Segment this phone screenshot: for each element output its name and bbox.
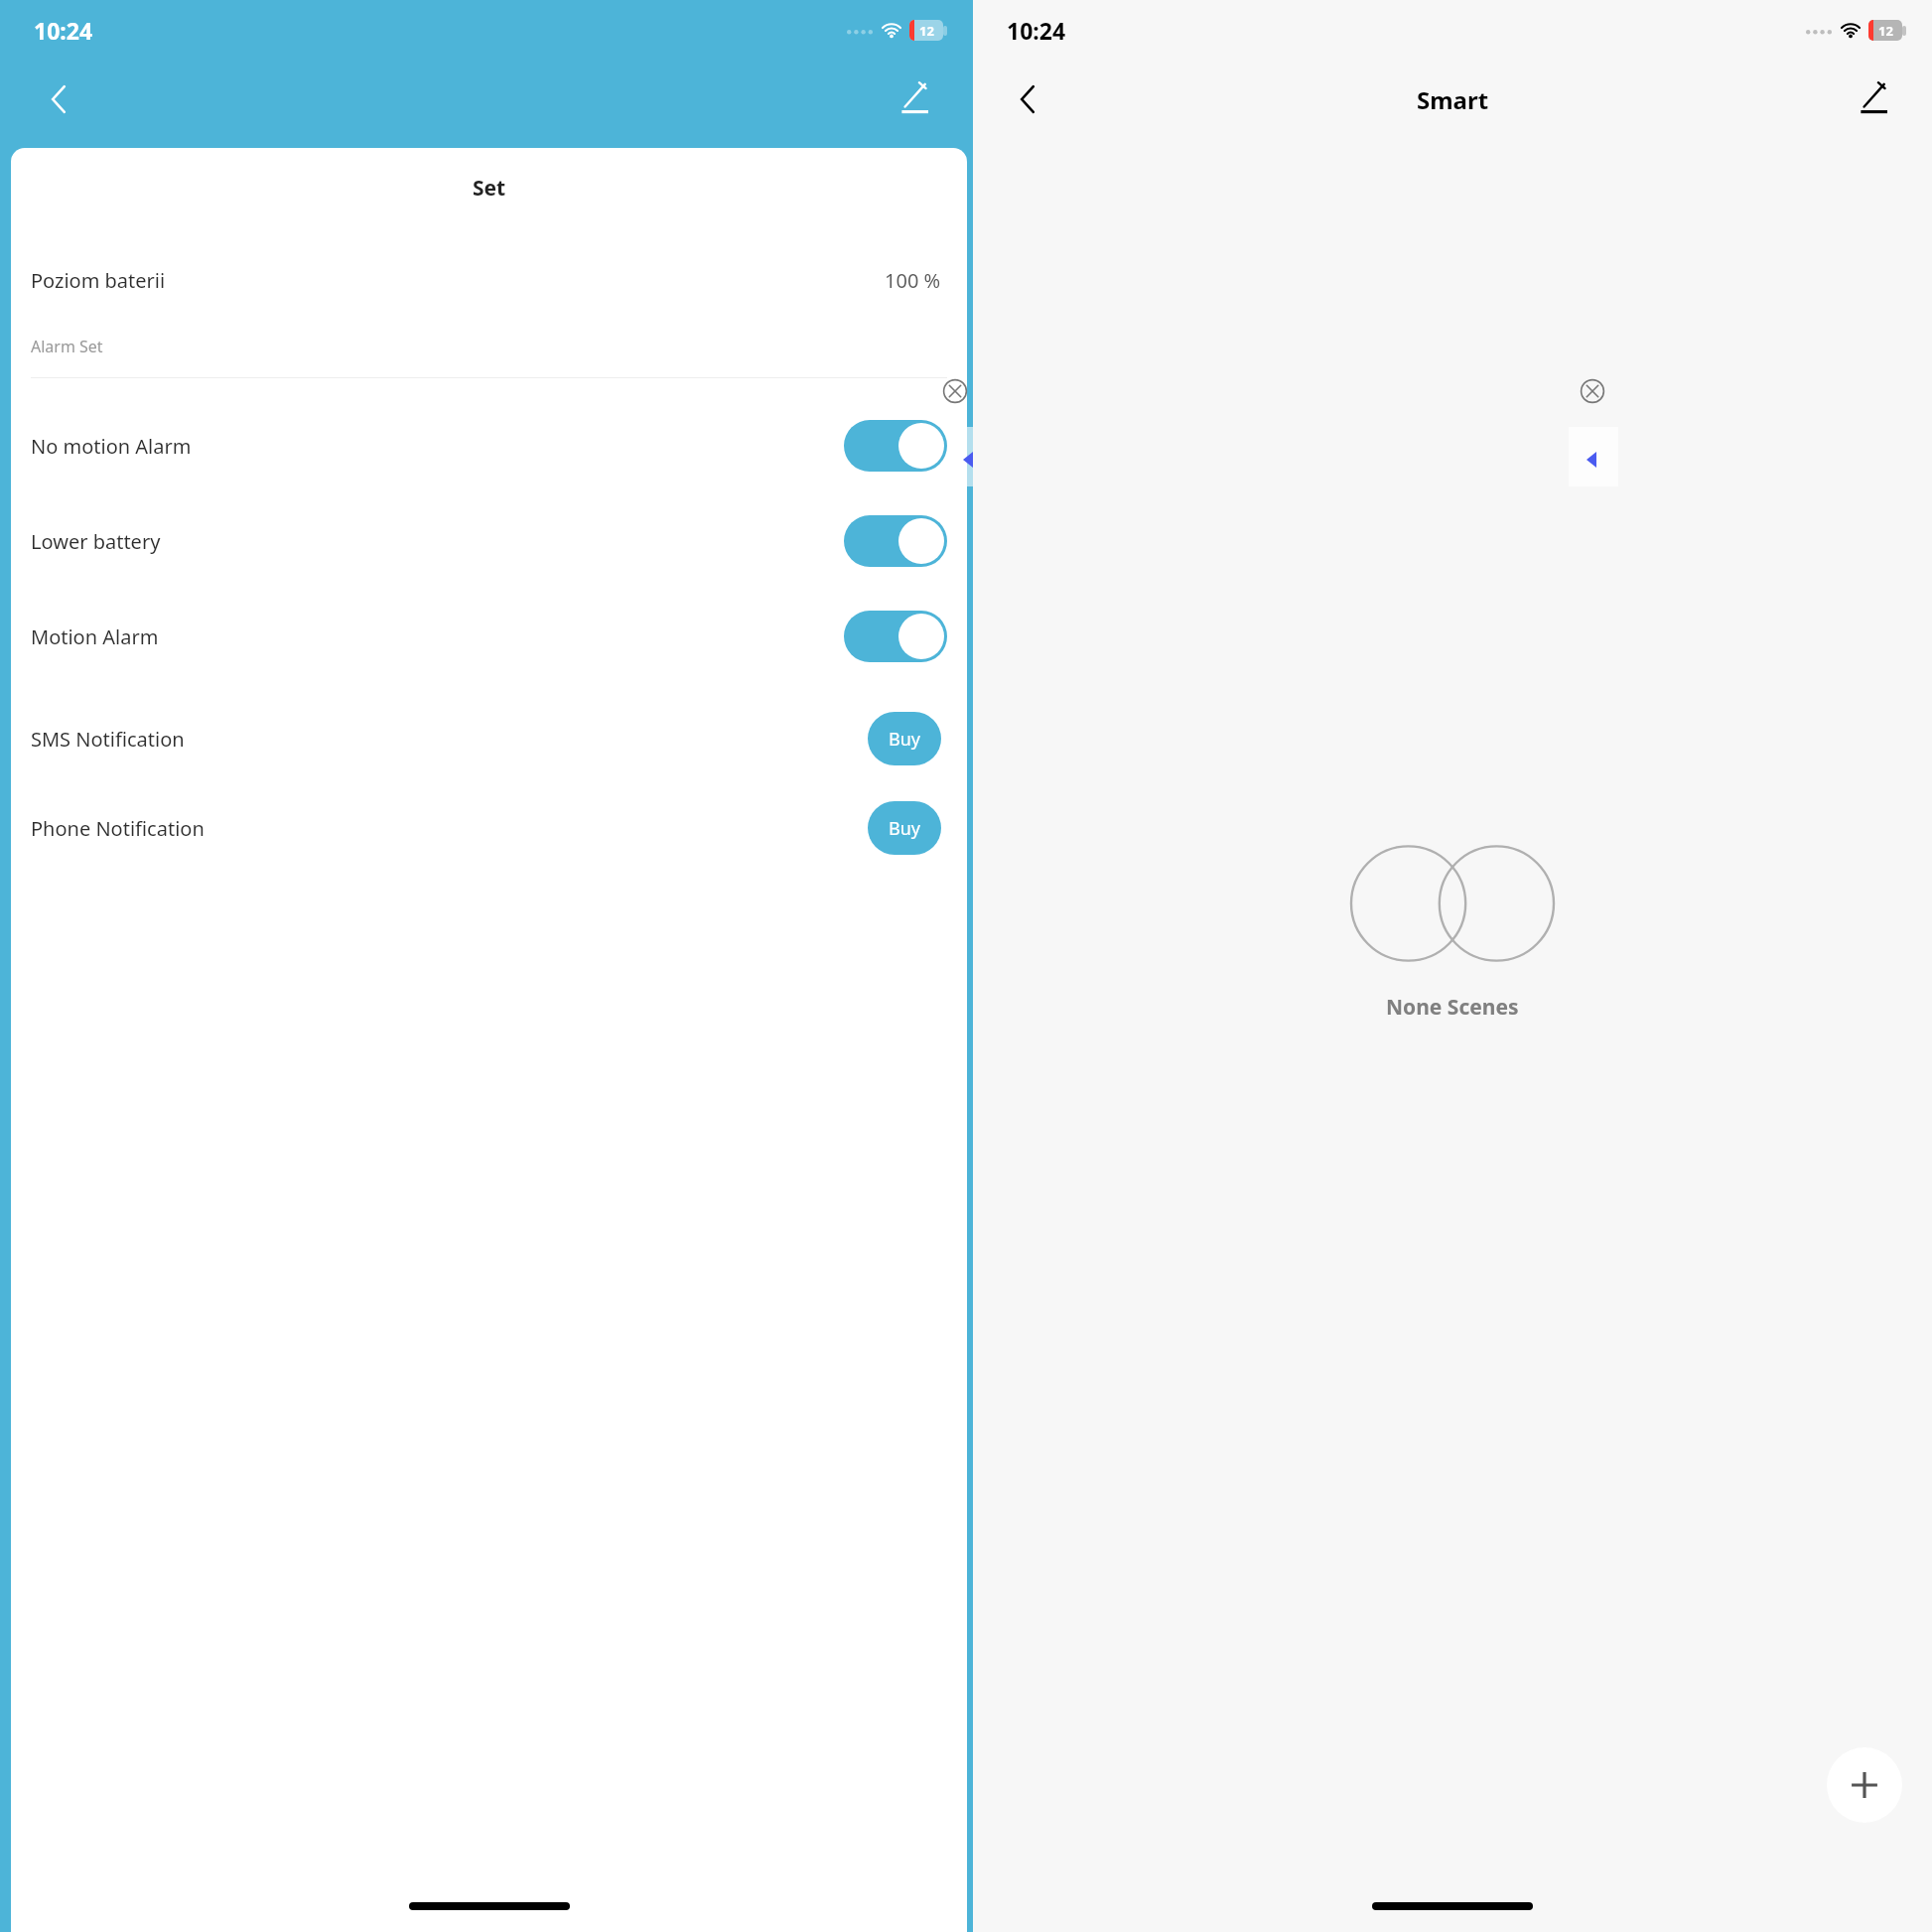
button[interactable]: Lower battery	[11, 513, 967, 569]
staticText: Poziom baterii	[31, 267, 166, 294]
button[interactable]: Buy	[868, 801, 941, 855]
button[interactable]: Motion Alarm	[11, 609, 967, 664]
button[interactable]: Back	[999, 69, 1058, 129]
button[interactable]: Poziom baterii	[11, 252, 967, 308]
staticText: 10:24	[1007, 15, 1066, 46]
staticText: 100 %	[885, 267, 941, 294]
staticText: Buy	[889, 727, 921, 752]
button[interactable]	[844, 420, 947, 472]
staticText: Smart	[1417, 83, 1489, 116]
button[interactable]: No motion Alarm	[11, 418, 967, 474]
button[interactable]	[844, 611, 947, 662]
button[interactable]: Add scene	[1827, 1747, 1902, 1823]
staticText: No motion Alarm	[31, 433, 192, 460]
button[interactable]: Close	[941, 377, 969, 405]
staticText: SMS Notification	[31, 726, 185, 753]
staticText: Phone Notification	[31, 815, 205, 842]
staticText: 10:24	[34, 15, 93, 46]
staticText: None Scenes	[1386, 993, 1519, 1022]
button[interactable]: Buy	[868, 712, 941, 765]
staticText: Set	[11, 174, 967, 203]
button[interactable]	[844, 515, 947, 567]
button[interactable]: Close	[1579, 377, 1606, 405]
staticText: Lower battery	[31, 528, 161, 555]
button[interactable]: Edit	[884, 69, 943, 129]
button[interactable]: Back	[30, 69, 89, 129]
staticText: 12	[919, 22, 934, 40]
staticText: 12	[1878, 22, 1893, 40]
button[interactable]: Edit	[1843, 69, 1902, 129]
staticText: Motion Alarm	[31, 623, 159, 650]
staticText: Alarm Set	[31, 336, 103, 357]
staticText: Buy	[889, 816, 921, 841]
